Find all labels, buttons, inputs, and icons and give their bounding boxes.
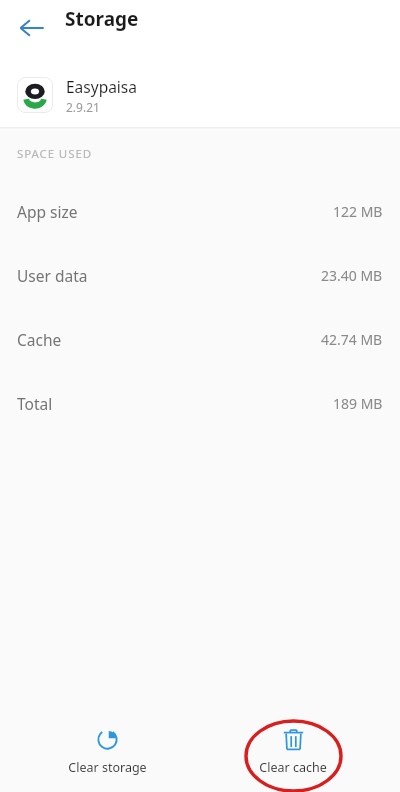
other: Clear storage <box>96 728 119 751</box>
staticText: Clear storage <box>68 759 147 776</box>
staticText: User data <box>17 265 88 286</box>
staticText: Easypaisa <box>66 76 137 97</box>
button[interactable]: Clear cache <box>213 706 373 776</box>
staticText: Storage <box>65 6 139 32</box>
staticText: 122 MB <box>333 202 383 221</box>
staticText: 23.40 MB <box>321 266 383 285</box>
staticText: SPACE USED <box>17 146 92 162</box>
button[interactable]: Cache <box>0 307 400 371</box>
button[interactable]: App size <box>0 179 400 243</box>
button[interactable]: Clear storage <box>27 706 187 776</box>
staticText: Clear cache <box>259 759 327 776</box>
staticText: 42.74 MB <box>321 330 383 349</box>
staticText: App size <box>17 201 78 222</box>
button[interactable]: Total <box>0 371 400 435</box>
staticText: Total <box>17 393 53 414</box>
button[interactable]: User data <box>0 243 400 307</box>
staticText: 189 MB <box>333 394 383 413</box>
staticText: 2.9.21 <box>66 99 100 115</box>
button[interactable]: Easypaisa <box>0 72 400 118</box>
button[interactable]: Back <box>6 2 58 54</box>
staticText: Cache <box>17 329 62 350</box>
other: Clear cache <box>282 728 305 751</box>
